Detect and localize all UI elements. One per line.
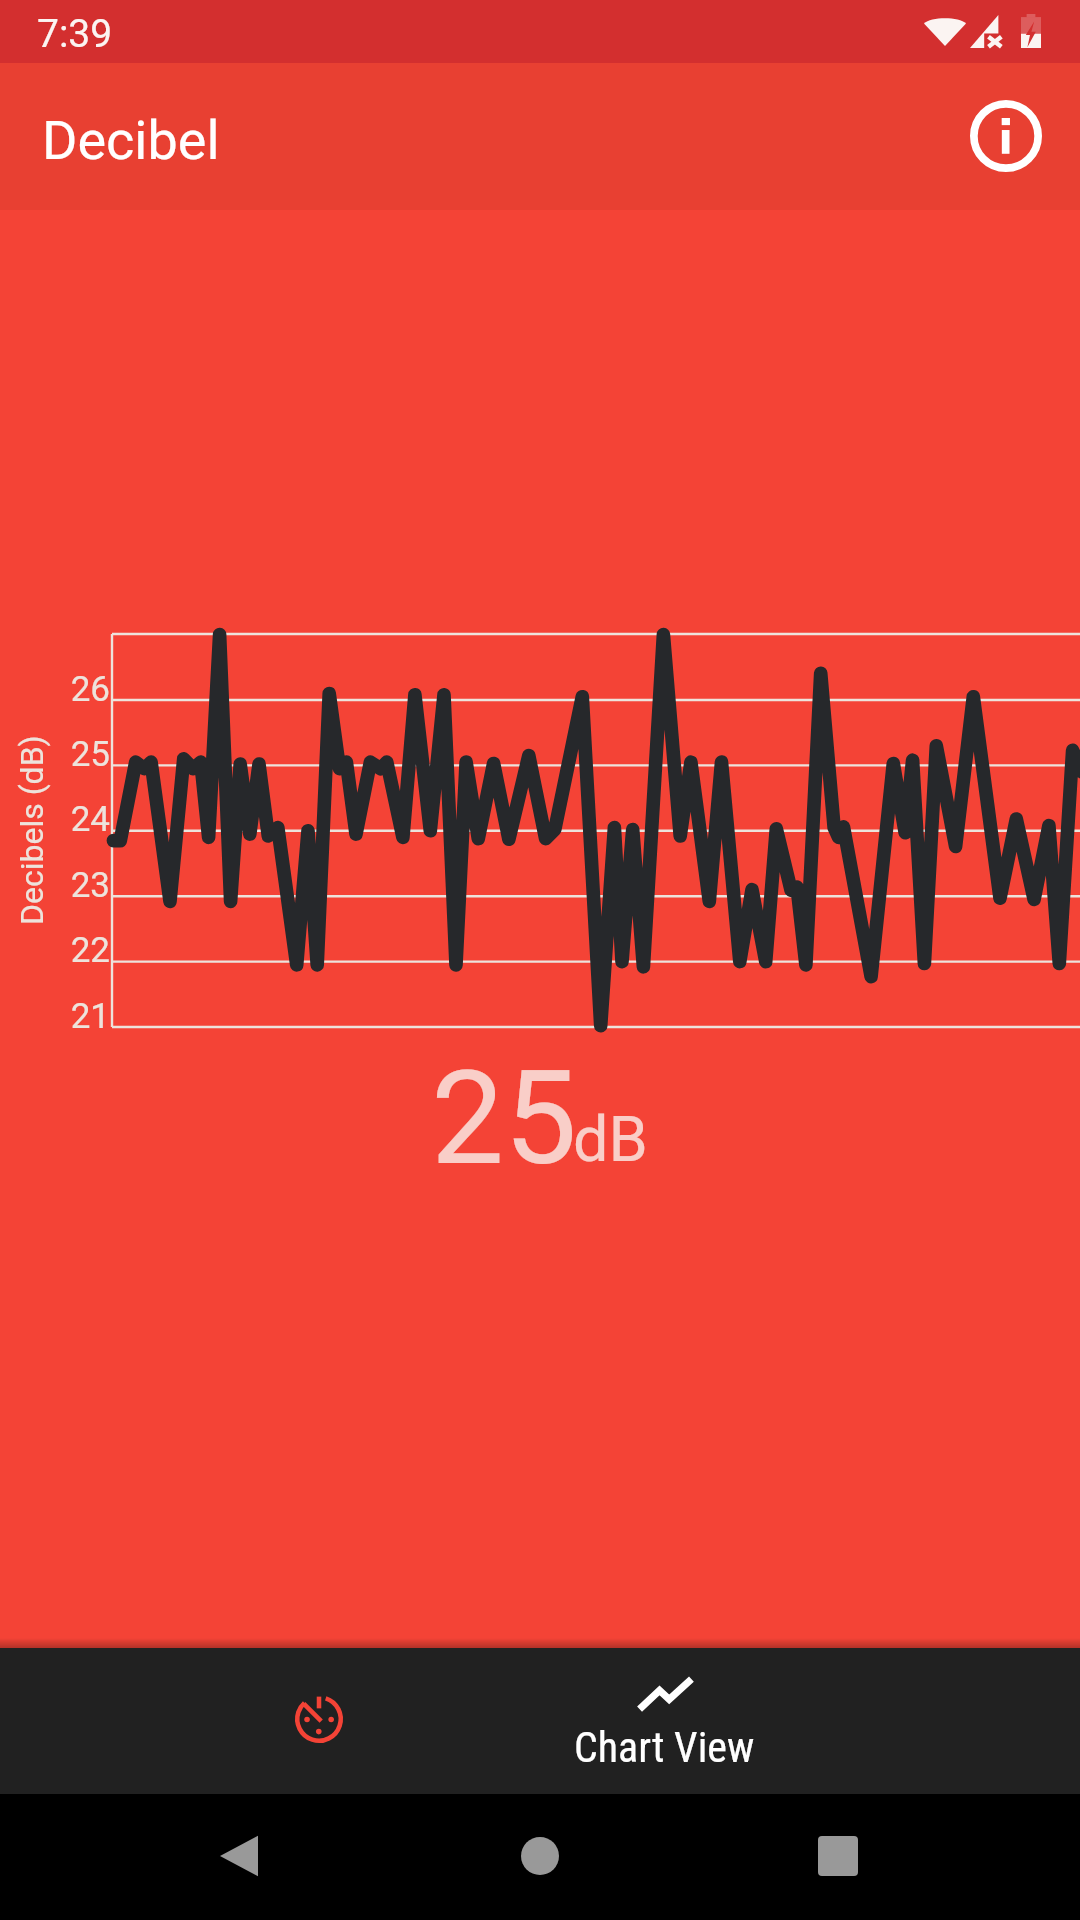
button[interactable]: Meter View	[186, 1648, 450, 1793]
staticText: 24	[70, 799, 110, 840]
button[interactable]: Recent apps	[758, 1796, 918, 1916]
staticText: 7:39	[37, 11, 113, 57]
staticText: 25	[431, 1042, 578, 1194]
button[interactable]: Home	[460, 1796, 620, 1916]
staticText: dB	[573, 1103, 648, 1177]
staticText: 21	[70, 996, 110, 1037]
staticText: 22	[70, 930, 110, 971]
staticText: 23	[70, 865, 110, 906]
staticText: 25	[70, 734, 110, 775]
button[interactable]: Info	[958, 88, 1054, 184]
button[interactable]: Chart View	[503, 1648, 827, 1793]
staticText: Decibel	[42, 109, 220, 172]
button[interactable]: Back	[159, 1796, 319, 1916]
staticText: Decibels (dB)	[13, 735, 51, 925]
staticText: Chart View	[574, 1723, 755, 1772]
staticText: 26	[70, 669, 110, 710]
